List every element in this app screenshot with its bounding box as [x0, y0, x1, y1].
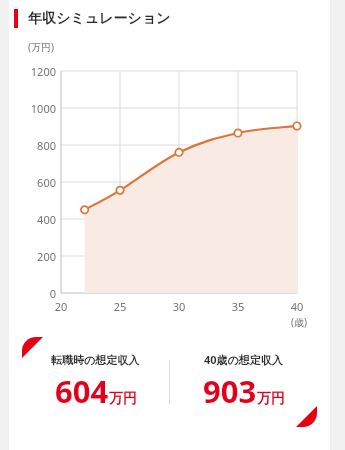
staticText: 20 — [47, 299, 75, 314]
staticText: 400 — [9, 212, 56, 227]
staticText: 40歳の想定収入 — [204, 352, 283, 367]
staticText: 800 — [9, 138, 56, 153]
staticText: 1000 — [9, 101, 56, 116]
staticText: 40 — [283, 299, 311, 314]
staticText: 903 — [203, 370, 257, 412]
button[interactable]: 転職時の想定収入 — [22, 337, 317, 427]
staticText: 万円 — [257, 390, 285, 408]
staticText: 万円 — [109, 390, 137, 408]
staticText: (万円) — [28, 40, 54, 54]
staticText: 1200 — [9, 64, 56, 79]
staticText: 30 — [165, 299, 193, 314]
staticText: 35 — [224, 299, 252, 314]
staticText: 転職時の想定収入 — [51, 353, 140, 367]
staticText: 年収シミュレーション — [28, 10, 171, 28]
staticText: 600 — [9, 175, 56, 190]
staticText: 25 — [106, 299, 134, 314]
staticText: (歳) — [291, 315, 307, 329]
staticText: 0 — [9, 286, 56, 301]
staticText: 604 — [55, 370, 109, 412]
staticText: 200 — [9, 249, 56, 264]
